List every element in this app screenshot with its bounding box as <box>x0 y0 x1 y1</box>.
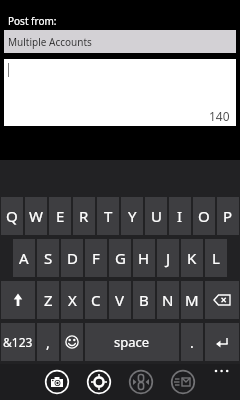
staticText: Z <box>44 290 53 310</box>
button[interactable] <box>210 365 234 377</box>
staticText: Y <box>128 206 137 226</box>
button[interactable]: O <box>193 197 215 235</box>
staticText: X <box>68 290 77 310</box>
staticText: space <box>114 333 150 351</box>
staticText: U <box>151 206 162 226</box>
button[interactable] <box>1 281 35 319</box>
button[interactable] <box>85 368 113 396</box>
button[interactable]: M <box>181 281 203 319</box>
staticText: Multiple Accounts <box>8 35 92 49</box>
staticText: G <box>115 248 126 268</box>
button[interactable]: F <box>85 239 107 277</box>
button[interactable]: X <box>61 281 83 319</box>
button[interactable]: space <box>85 323 179 361</box>
button[interactable]: Z <box>37 281 59 319</box>
button[interactable]: K <box>181 239 203 277</box>
button[interactable] <box>205 323 239 361</box>
staticText: E <box>56 206 65 226</box>
staticText: N <box>162 290 174 310</box>
button[interactable]: D <box>61 239 83 277</box>
button[interactable] <box>205 281 239 319</box>
staticText: B <box>139 290 149 310</box>
staticText: &123 <box>3 334 33 350</box>
button[interactable]: H <box>133 239 155 277</box>
staticText: H <box>138 248 150 268</box>
button[interactable]: S <box>37 239 59 277</box>
button[interactable]: &123 <box>1 323 35 361</box>
button[interactable]: U <box>145 197 167 235</box>
button[interactable] <box>127 368 155 396</box>
staticText: V <box>115 290 125 310</box>
staticText: S <box>44 248 53 268</box>
staticText: , <box>46 333 50 352</box>
button[interactable]: I <box>169 197 191 235</box>
staticText: L <box>212 248 220 268</box>
staticText: P <box>223 206 233 226</box>
button[interactable]: 140 <box>4 59 236 126</box>
staticText: C <box>91 290 101 310</box>
button[interactable] <box>43 368 71 396</box>
staticText: J <box>166 248 171 268</box>
button[interactable]: G <box>109 239 131 277</box>
button[interactable]: B <box>133 281 155 319</box>
button[interactable]: , <box>37 323 59 361</box>
button[interactable]: C <box>85 281 107 319</box>
button[interactable]: A <box>13 239 35 277</box>
button[interactable]: R <box>73 197 95 235</box>
button[interactable]: Q <box>1 197 23 235</box>
staticText: Q <box>6 206 18 226</box>
staticText: K <box>187 248 197 268</box>
button[interactable]: L <box>205 239 227 277</box>
staticText: I <box>177 206 183 226</box>
staticText: 140 <box>209 108 230 124</box>
staticText: T <box>104 206 113 226</box>
button[interactable]: Y <box>121 197 143 235</box>
staticText: A <box>19 248 29 268</box>
button[interactable]: Multiple Accounts <box>4 30 236 53</box>
staticText: D <box>67 248 78 268</box>
button[interactable]: . <box>181 323 203 361</box>
staticText: . <box>190 333 194 352</box>
button[interactable] <box>169 368 197 396</box>
staticText: M <box>185 290 199 310</box>
button[interactable] <box>61 323 83 361</box>
staticText: F <box>92 248 100 268</box>
staticText: R <box>79 206 89 226</box>
button[interactable]: V <box>109 281 131 319</box>
staticText: W <box>29 206 43 226</box>
button[interactable]: P <box>217 197 239 235</box>
button[interactable]: N <box>157 281 179 319</box>
button[interactable]: W <box>25 197 47 235</box>
button[interactable]: E <box>49 197 71 235</box>
button[interactable]: J <box>157 239 179 277</box>
button[interactable]: T <box>97 197 119 235</box>
staticText: Post from: <box>8 14 57 28</box>
staticText: O <box>198 206 210 226</box>
